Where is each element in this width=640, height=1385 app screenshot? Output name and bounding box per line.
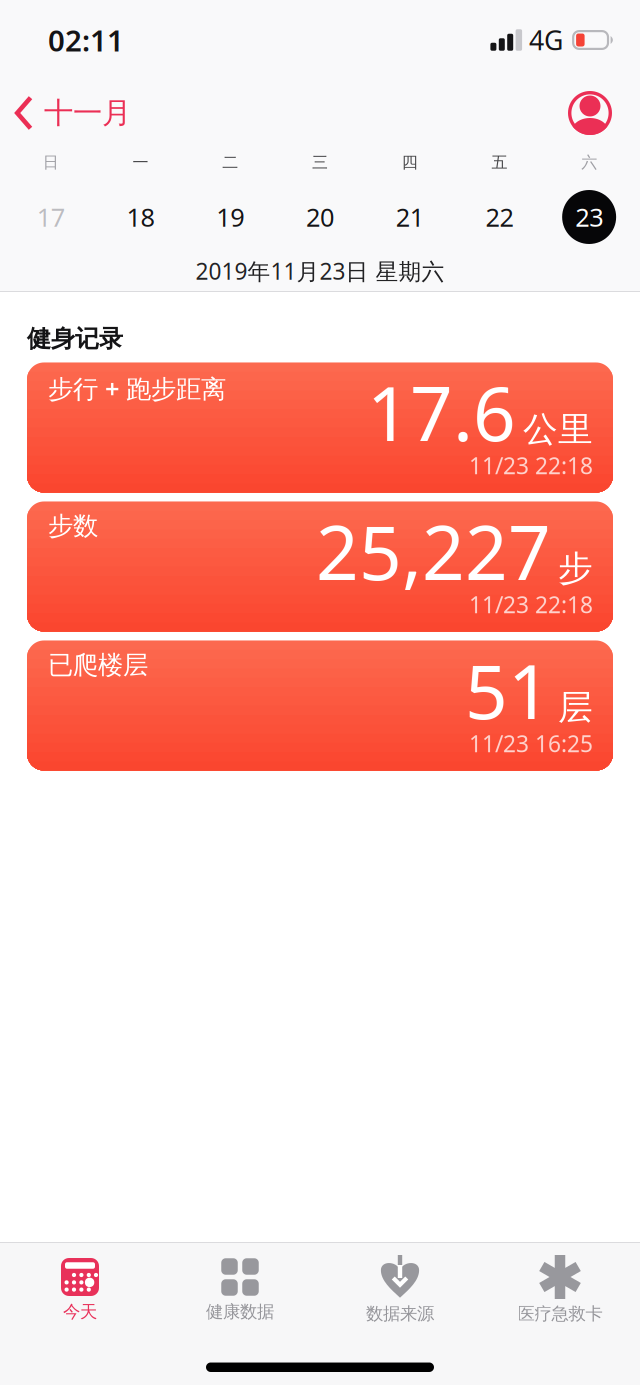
staticText: 11/23 22:18	[469, 589, 593, 619]
button[interactable]: 已爬楼层	[27, 640, 613, 770]
button[interactable]: 22	[455, 200, 544, 234]
button[interactable]: 医疗急救卡	[480, 1255, 640, 1324]
staticText: 日	[43, 153, 59, 172]
staticText: 健康数据	[206, 1301, 274, 1322]
button[interactable]: 个人资料	[568, 91, 612, 135]
staticText: 22	[485, 200, 513, 234]
staticText: 三	[312, 153, 328, 172]
button[interactable]: 17	[6, 200, 96, 234]
staticText: 步行 + 跑步距离	[48, 371, 226, 405]
staticText: 20	[306, 200, 334, 234]
staticText: 17.6	[367, 362, 516, 462]
staticText: 4G	[529, 22, 563, 58]
button[interactable]: 返回 十一月	[15, 95, 131, 131]
staticText: 层	[558, 686, 593, 729]
staticText: 二	[222, 153, 238, 172]
staticText: 23	[575, 200, 603, 234]
staticText: 十一月	[44, 95, 131, 131]
staticText: 五	[491, 153, 507, 172]
button[interactable]: 23	[544, 190, 634, 244]
staticText: 健身记录	[27, 324, 123, 353]
button[interactable]: 数据来源	[320, 1255, 480, 1324]
button[interactable]: 21	[365, 200, 455, 234]
button[interactable]: 19	[185, 200, 275, 234]
staticText: 医疗急救卡	[517, 1303, 602, 1324]
staticText: 02:11	[48, 20, 124, 59]
staticText: 11/23 22:18	[469, 450, 593, 480]
staticText: 今天	[63, 1301, 97, 1322]
button[interactable]: 18	[96, 200, 185, 234]
button[interactable]: 步行 + 跑步距离	[27, 362, 613, 492]
staticText: 18	[127, 200, 155, 234]
staticText: 步	[558, 547, 593, 590]
staticText: 四	[402, 153, 418, 172]
button[interactable]: 步数	[27, 501, 613, 631]
staticText: 25,227	[316, 501, 551, 601]
staticText: 数据来源	[366, 1303, 434, 1324]
staticText: 已爬楼层	[48, 649, 148, 681]
staticText: 2019年11月23日 星期六	[195, 256, 444, 286]
staticText: 51	[465, 640, 551, 740]
button[interactable]: 健康数据	[160, 1257, 320, 1322]
button[interactable]: 今天	[0, 1257, 160, 1322]
staticText: 11/23 16:25	[469, 728, 593, 758]
staticText: 21	[396, 200, 424, 234]
staticText: 六	[581, 153, 597, 172]
button[interactable]: 20	[275, 200, 365, 234]
staticText: 一	[133, 153, 149, 172]
staticText: 公里	[523, 408, 593, 451]
staticText: 19	[216, 200, 244, 234]
staticText: 17	[37, 200, 65, 234]
staticText: 步数	[48, 510, 98, 542]
